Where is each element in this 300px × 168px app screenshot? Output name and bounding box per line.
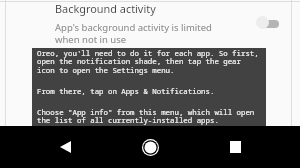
button[interactable]: Background activity: [0, 0, 300, 46]
staticText: Background activity: [55, 1, 156, 16]
staticText: icon to open the Settings menu.: [37, 65, 175, 75]
staticText: App's background activity is limited whe…: [55, 21, 212, 45]
staticText: Oreo, you'll need to do it for each app.…: [37, 48, 259, 58]
staticText: Choose "App info" from this menu, which …: [37, 107, 255, 117]
button[interactable]: Back: [44, 131, 86, 163]
button[interactable]: Home: [129, 131, 171, 163]
staticText: From there, tap on Apps & Notifications.: [37, 86, 215, 96]
staticText: the list of all currently-installed apps…: [37, 115, 219, 125]
button[interactable]: Recent apps: [214, 131, 256, 163]
staticText: open the notification shade, then tap th…: [37, 56, 241, 66]
button[interactable]: Background activity toggle: [255, 0, 300, 46]
